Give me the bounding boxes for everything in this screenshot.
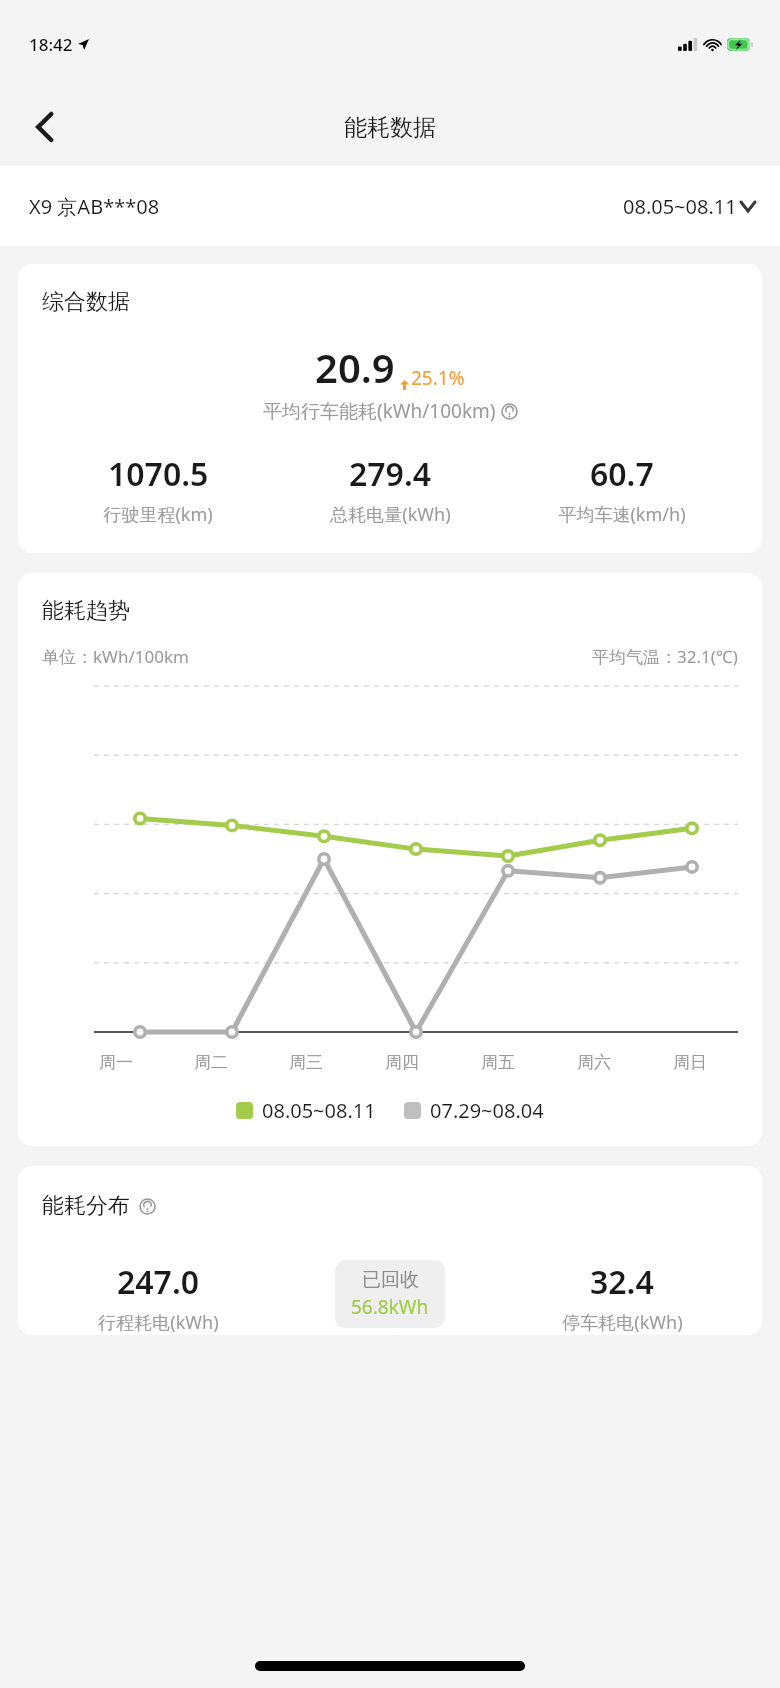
staticText: 07.29~08.04: [430, 1097, 544, 1124]
staticText: 能耗分布: [42, 1192, 130, 1220]
staticText: 周日: [673, 1052, 707, 1073]
staticText: 能耗数据: [344, 113, 436, 142]
staticText: 1070.5: [108, 452, 209, 496]
button[interactable]: 08.05~08.11: [623, 193, 755, 220]
staticText: 32.4: [590, 1260, 654, 1304]
staticText: 08.05~08.11: [262, 1097, 376, 1124]
staticText: 总耗电量(kWh): [330, 502, 451, 527]
staticText: X9 京AB***08: [29, 193, 160, 220]
staticText: 56.8kWh: [351, 1294, 429, 1320]
staticText: 周一: [99, 1052, 133, 1073]
staticText: 行程耗电(kWh): [98, 1310, 219, 1335]
staticText: 周二: [194, 1052, 228, 1073]
staticText: 周三: [289, 1052, 323, 1073]
staticText: 停车耗电(kWh): [562, 1310, 683, 1335]
staticText: 平均行车能耗(kWh/100km): [263, 398, 496, 424]
staticText: 周六: [577, 1052, 611, 1073]
staticText: 综合数据: [42, 288, 130, 316]
staticText: 60.7: [590, 452, 654, 496]
staticText: 行驶里程(km): [103, 502, 213, 527]
staticText: 平均车速(km/h): [558, 502, 686, 527]
staticText: 18:42: [29, 33, 73, 56]
staticText: 08.05~08.11: [623, 193, 737, 220]
staticText: 平均气温：32.1(℃): [592, 645, 738, 668]
staticText: 279.4: [349, 452, 432, 496]
button[interactable]: Back: [20, 103, 68, 151]
staticText: 25.1%: [411, 365, 465, 391]
staticText: 周四: [385, 1052, 419, 1073]
staticText: 单位：kWh/100km: [42, 645, 189, 668]
button[interactable]: 综合数据: [18, 264, 762, 553]
staticText: 20.9: [315, 340, 395, 394]
staticText: 已回收: [362, 1268, 419, 1292]
staticText: 周五: [481, 1052, 515, 1073]
staticText: 247.0: [117, 1260, 200, 1304]
staticText: 能耗趋势: [42, 597, 130, 625]
